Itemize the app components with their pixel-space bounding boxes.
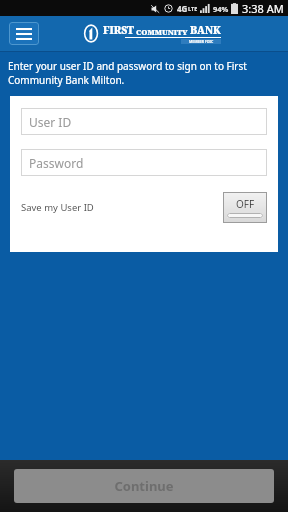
- staticText: Continue: [114, 477, 174, 495]
- button[interactable]: User ID: [21, 108, 267, 135]
- button[interactable]: Menu: [9, 22, 39, 45]
- staticText: BANK: [190, 23, 221, 37]
- button[interactable]: Password: [21, 149, 267, 176]
- staticText: 3:38 AM: [242, 1, 284, 16]
- staticText: OFF: [236, 197, 255, 211]
- staticText: Enter your user ID and password to sign …: [8, 59, 247, 87]
- staticText: COMMUNITY: [136, 27, 188, 37]
- staticText: MEMBER FDIC: [189, 39, 214, 44]
- staticText: 4G: [177, 3, 188, 14]
- button[interactable]: Save my User ID off: [223, 192, 267, 223]
- staticText: Save my User ID: [21, 201, 94, 214]
- staticText: 94%: [213, 4, 229, 14]
- staticText: LTE: [188, 5, 198, 12]
- staticText: FIRST: [103, 23, 134, 37]
- button[interactable]: Continue: [14, 469, 274, 503]
- staticText: User ID: [29, 114, 72, 130]
- staticText: Password: [29, 155, 84, 171]
